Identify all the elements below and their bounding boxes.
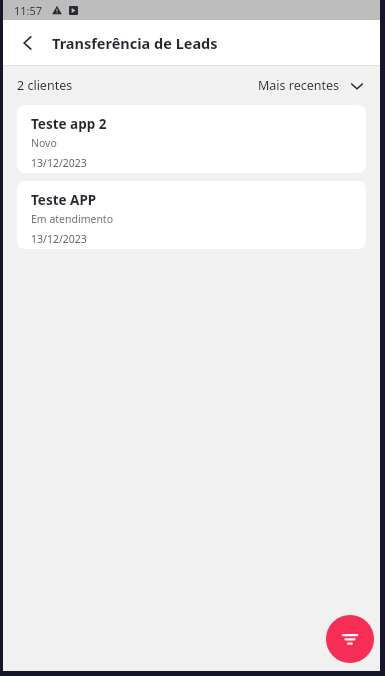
staticText: 13/12/2023 xyxy=(31,156,87,170)
button[interactable]: Teste app 2 xyxy=(17,105,366,173)
staticText: Mais recentes xyxy=(258,77,340,94)
staticText: Novo xyxy=(31,136,57,150)
staticText: Teste app 2 xyxy=(31,115,107,133)
staticText: 2 clientes xyxy=(17,77,73,94)
button[interactable]: Mais recentes xyxy=(256,73,366,98)
staticText: 13/12/2023 xyxy=(31,232,87,246)
button[interactable]: Back xyxy=(9,24,47,62)
staticText: Em atendimento xyxy=(31,212,114,226)
staticText: Teste APP xyxy=(31,191,97,209)
button[interactable]: Filter xyxy=(326,615,374,663)
button[interactable]: Teste APP xyxy=(17,181,366,249)
staticText: Transferência de Leads xyxy=(52,33,218,53)
staticText: 11:57 xyxy=(14,3,43,18)
